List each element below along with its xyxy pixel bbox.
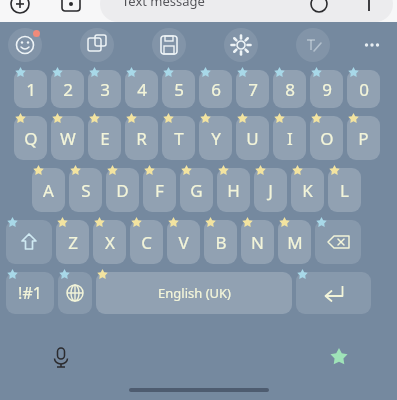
button[interactable]: J bbox=[254, 168, 287, 212]
button[interactable]: P bbox=[347, 116, 380, 160]
button[interactable]: Clipboard bbox=[152, 28, 186, 62]
staticText: X bbox=[105, 231, 115, 254]
staticText: W bbox=[60, 127, 76, 150]
button[interactable]: F bbox=[143, 168, 176, 212]
button[interactable]: H bbox=[217, 168, 250, 212]
staticText: C bbox=[141, 231, 152, 254]
button[interactable]: X bbox=[93, 220, 126, 264]
button[interactable]: 3 bbox=[88, 70, 121, 108]
staticText: 6 bbox=[211, 78, 221, 101]
button[interactable]: N bbox=[241, 220, 274, 264]
button[interactable]: O bbox=[310, 116, 343, 160]
button[interactable]: 0 bbox=[347, 70, 380, 108]
staticText: Q bbox=[24, 127, 38, 150]
button[interactable]: 6 bbox=[199, 70, 232, 108]
button[interactable]: Emoji bbox=[8, 28, 42, 62]
button[interactable]: English (UK) bbox=[96, 272, 292, 314]
button[interactable]: Q bbox=[14, 116, 47, 160]
button[interactable]: 9 bbox=[310, 70, 343, 108]
button[interactable]: R bbox=[125, 116, 158, 160]
staticText: M bbox=[287, 231, 303, 254]
staticText: E bbox=[100, 127, 110, 150]
button[interactable]: C bbox=[130, 220, 163, 264]
button[interactable]: Voice input bbox=[46, 342, 76, 372]
button[interactable]: K bbox=[291, 168, 324, 212]
staticText: !#1 bbox=[18, 282, 42, 304]
staticText: U bbox=[246, 127, 259, 150]
button[interactable]: 5 bbox=[162, 70, 195, 108]
button[interactable]: W bbox=[51, 116, 84, 160]
button[interactable]: T bbox=[162, 116, 195, 160]
button[interactable]: 2 bbox=[51, 70, 84, 108]
staticText: N bbox=[251, 231, 264, 254]
staticText: J bbox=[268, 179, 273, 202]
staticText: Y bbox=[211, 127, 221, 150]
staticText: 3 bbox=[100, 78, 110, 101]
button[interactable]: 4 bbox=[125, 70, 158, 108]
staticText: Text message bbox=[122, 0, 205, 10]
button[interactable]: G bbox=[180, 168, 213, 212]
button[interactable]: Z bbox=[56, 220, 89, 264]
staticText: 7 bbox=[248, 78, 258, 101]
button[interactable]: V bbox=[167, 220, 200, 264]
button[interactable]: Settings bbox=[224, 28, 258, 62]
staticText: 2 bbox=[63, 78, 73, 101]
button[interactable]: Sticker bbox=[80, 28, 114, 62]
button[interactable]: More options bbox=[355, 28, 389, 62]
staticText: 5 bbox=[174, 78, 184, 101]
staticText: 8 bbox=[285, 78, 295, 101]
button[interactable]: S bbox=[69, 168, 102, 212]
button[interactable]: Enter bbox=[296, 272, 371, 314]
staticText: 9 bbox=[322, 78, 332, 101]
button[interactable]: Y bbox=[199, 116, 232, 160]
staticText: A bbox=[43, 179, 54, 202]
staticText: I bbox=[287, 127, 293, 150]
button[interactable]: 1 bbox=[14, 70, 47, 108]
staticText: 1 bbox=[26, 78, 36, 101]
staticText: 0 bbox=[359, 78, 369, 101]
staticText: T bbox=[174, 127, 184, 150]
button[interactable]: I bbox=[273, 116, 306, 160]
staticText: G bbox=[190, 179, 203, 202]
button[interactable]: 8 bbox=[273, 70, 306, 108]
button[interactable]: D bbox=[106, 168, 139, 212]
staticText: O bbox=[320, 127, 334, 150]
button[interactable]: L bbox=[328, 168, 361, 212]
staticText: R bbox=[136, 127, 147, 150]
button[interactable]: !#1 bbox=[6, 272, 54, 314]
button[interactable]: M bbox=[278, 220, 311, 264]
staticText: D bbox=[116, 179, 129, 202]
staticText: H bbox=[227, 179, 240, 202]
button[interactable]: 7 bbox=[236, 70, 269, 108]
staticText: V bbox=[178, 231, 189, 254]
button[interactable]: U bbox=[236, 116, 269, 160]
staticText: 4 bbox=[137, 78, 147, 101]
staticText: S bbox=[81, 179, 91, 202]
staticText: L bbox=[340, 179, 349, 202]
button[interactable]: Translate bbox=[296, 28, 330, 62]
button[interactable]: E bbox=[88, 116, 121, 160]
button[interactable]: Backspace bbox=[315, 220, 361, 264]
staticText: Z bbox=[68, 231, 78, 254]
staticText: P bbox=[358, 127, 369, 150]
staticText: English (UK) bbox=[158, 284, 231, 302]
button[interactable]: B bbox=[204, 220, 237, 264]
staticText: F bbox=[155, 179, 164, 202]
button[interactable]: Change language bbox=[58, 272, 92, 314]
staticText: K bbox=[302, 179, 313, 202]
button[interactable]: A bbox=[32, 168, 65, 212]
staticText: B bbox=[215, 231, 227, 254]
button[interactable]: Shift bbox=[6, 220, 52, 264]
